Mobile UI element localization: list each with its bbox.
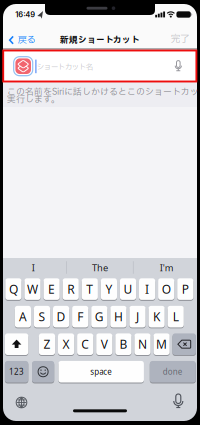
button[interactable]: W xyxy=(24,278,41,300)
staticText: B xyxy=(119,336,127,352)
staticText: M xyxy=(156,336,167,352)
staticText: X xyxy=(63,336,70,352)
staticText: E xyxy=(48,281,55,297)
button[interactable]: P xyxy=(177,278,193,300)
staticText: 完了 xyxy=(171,32,189,46)
staticText: C xyxy=(81,336,89,352)
staticText: D xyxy=(57,309,66,325)
staticText: W xyxy=(27,281,38,297)
button[interactable]: K xyxy=(148,306,165,327)
staticText: P xyxy=(182,281,189,297)
staticText: done xyxy=(163,366,183,377)
button[interactable]: D xyxy=(53,306,69,327)
button[interactable]: 絵文字 xyxy=(32,361,54,382)
button[interactable]: R xyxy=(63,278,79,300)
staticText: 実行します。 xyxy=(7,93,60,106)
button[interactable]: Q xyxy=(5,278,21,300)
staticText: 戻る xyxy=(17,33,35,47)
staticText: Z xyxy=(43,336,50,352)
button[interactable]: V xyxy=(96,333,112,355)
staticText: ショートカット名 xyxy=(37,62,93,73)
button[interactable]: 123 xyxy=(5,361,28,382)
button[interactable]: アイコンを選択 xyxy=(14,57,33,76)
button[interactable]: C xyxy=(77,333,93,355)
button[interactable]: G xyxy=(91,306,107,327)
staticText: A xyxy=(19,309,27,325)
button[interactable]: N xyxy=(134,333,151,355)
staticText: Q xyxy=(9,281,18,297)
staticText: space xyxy=(90,366,112,377)
button[interactable]: M xyxy=(153,333,170,355)
button[interactable]: J xyxy=(129,306,146,327)
staticText: H xyxy=(114,309,123,325)
staticText: この名前をSiriに話しかけるとこのショートカットを xyxy=(7,85,200,99)
button[interactable]: The xyxy=(92,261,108,274)
staticText: 123 xyxy=(9,366,24,377)
button[interactable]: L xyxy=(168,306,184,327)
button[interactable]: B xyxy=(115,333,131,355)
button[interactable]: 戻る xyxy=(8,33,35,47)
staticText: V xyxy=(101,336,108,352)
button[interactable]: H xyxy=(110,306,126,327)
button[interactable]: 完了 xyxy=(171,32,189,46)
button[interactable]: I'm xyxy=(160,261,174,274)
button[interactable]: X xyxy=(58,333,74,355)
staticText: O xyxy=(162,281,171,297)
staticText: S xyxy=(38,309,45,325)
staticText: 新規ショートカット xyxy=(60,34,140,46)
button[interactable]: done xyxy=(150,361,196,382)
button[interactable]: ショートカット名 xyxy=(37,60,157,74)
staticText: F xyxy=(77,309,83,325)
button[interactable]: E xyxy=(43,278,60,300)
button[interactable]: O xyxy=(158,278,174,300)
staticText: T xyxy=(86,281,93,297)
button[interactable]: U xyxy=(120,278,136,300)
staticText: K xyxy=(153,309,160,325)
staticText: J xyxy=(136,309,139,325)
button[interactable]: Shift xyxy=(5,333,28,355)
button[interactable]: S xyxy=(34,306,50,327)
staticText: Y xyxy=(105,281,112,297)
button[interactable]: Y xyxy=(101,278,117,300)
staticText: G xyxy=(95,309,104,325)
staticText: I xyxy=(145,281,149,297)
button[interactable]: 音声入力 xyxy=(169,58,187,76)
staticText: 16:49 xyxy=(15,10,35,19)
staticText: L xyxy=(173,309,179,325)
button[interactable]: 音声入力 xyxy=(169,392,187,412)
button[interactable]: A xyxy=(15,306,31,327)
staticText: I xyxy=(32,261,35,274)
staticText: U xyxy=(123,281,132,297)
button[interactable]: Delete xyxy=(172,333,196,355)
staticText: R xyxy=(67,281,74,297)
button[interactable]: I xyxy=(32,261,35,274)
button[interactable]: space xyxy=(58,361,144,382)
staticText: N xyxy=(138,336,147,352)
staticText: I'm xyxy=(160,261,174,274)
staticText: The xyxy=(92,261,108,274)
button[interactable]: F xyxy=(72,306,88,327)
button[interactable]: Z xyxy=(39,333,55,355)
button[interactable]: I xyxy=(139,278,155,300)
button[interactable]: T xyxy=(82,278,98,300)
button[interactable]: 次のキーボード xyxy=(15,396,28,409)
